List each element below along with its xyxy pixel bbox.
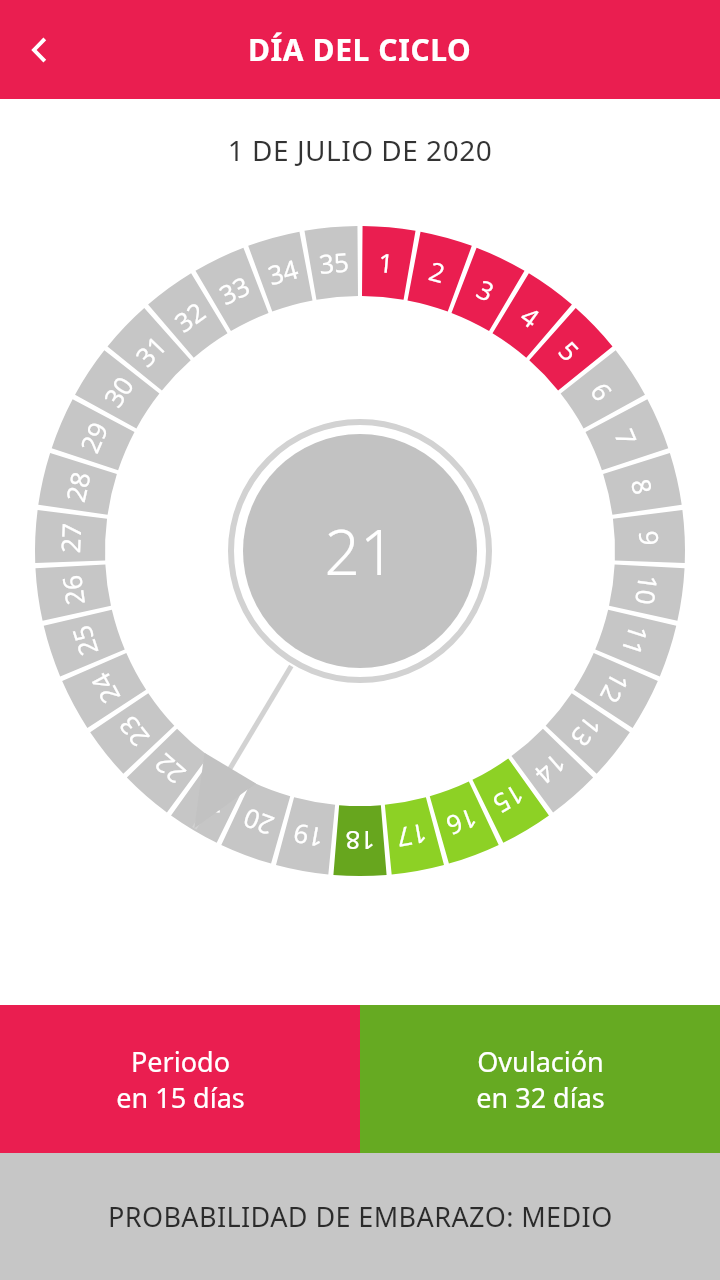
staticText: Ovulación en 32 días	[476, 1043, 605, 1116]
staticText: 1 DE JULIO DE 2020	[0, 131, 720, 169]
staticText: Periodo en 15 días	[116, 1043, 245, 1116]
button[interactable]: PROBABILIDAD DE EMBARAZO: MEDIO	[0, 1153, 720, 1280]
button[interactable]: Back	[8, 18, 72, 82]
staticText: PROBABILIDAD DE EMBARAZO: MEDIO	[108, 1198, 613, 1235]
button[interactable]: Periodo en 15 días	[0, 1005, 360, 1153]
staticText: DÍA DEL CICLO	[248, 29, 472, 70]
button[interactable]: Ovulación en 32 días	[360, 1005, 720, 1153]
